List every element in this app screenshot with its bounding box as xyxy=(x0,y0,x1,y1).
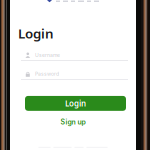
button[interactable]: Login xyxy=(25,96,126,111)
staticText: Sign up xyxy=(60,118,85,126)
staticText: Login xyxy=(18,24,54,42)
button[interactable]: Username xyxy=(18,50,128,61)
staticText: Username xyxy=(35,52,60,58)
staticText: Login xyxy=(65,98,86,109)
staticText: Password xyxy=(35,71,59,77)
button[interactable]: Sign up xyxy=(18,118,128,126)
button[interactable]: Password xyxy=(18,69,128,80)
